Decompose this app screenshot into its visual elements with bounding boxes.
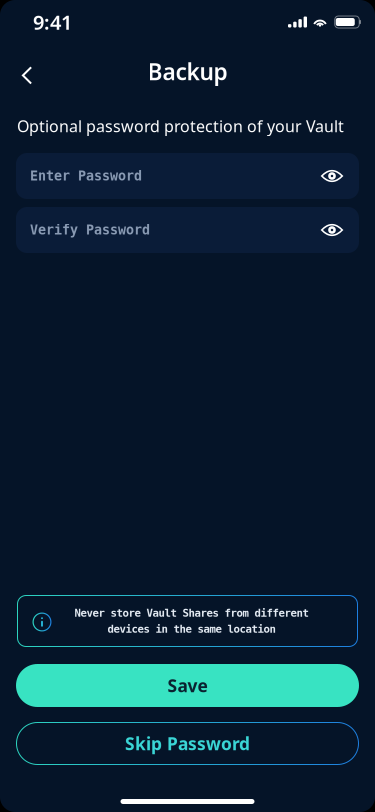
button[interactable]: Show Enter Password bbox=[315, 159, 349, 193]
button[interactable]: Show Verify Password bbox=[315, 213, 349, 247]
staticText: devices in the same location bbox=[107, 623, 275, 635]
button[interactable]: Skip Password bbox=[16, 722, 359, 765]
staticText: 9:41 bbox=[33, 9, 72, 35]
button[interactable]: Back bbox=[5, 49, 49, 93]
staticText: Enter Password bbox=[30, 168, 142, 183]
staticText: Save bbox=[167, 674, 207, 697]
button[interactable]: Save bbox=[16, 664, 359, 707]
staticText: Skip Password bbox=[125, 732, 250, 755]
staticText: Verify Password bbox=[30, 222, 150, 237]
staticText: Backup bbox=[147, 56, 227, 86]
staticText: Optional password protection of your Vau… bbox=[17, 115, 344, 137]
staticText: Never store Vault Shares from different bbox=[74, 607, 308, 619]
